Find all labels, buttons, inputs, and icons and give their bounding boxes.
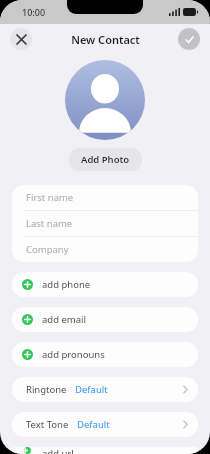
staticText: 10:00: [22, 6, 46, 18]
staticText: add pronouns: [42, 348, 105, 361]
staticText: add url: [42, 447, 74, 454]
staticText: Default: [77, 418, 110, 431]
button[interactable]: Company: [12, 237, 198, 262]
button[interactable]: add email: [12, 307, 198, 332]
button[interactable]: Done: [178, 28, 200, 50]
button[interactable]: Text Tone: [12, 412, 198, 437]
button[interactable]: Add Photo: [69, 148, 142, 171]
staticText: Company: [26, 243, 69, 256]
button[interactable]: Last name: [12, 211, 198, 236]
staticText: add phone: [42, 278, 91, 291]
button[interactable]: Ringtone: [12, 377, 198, 402]
staticText: add email: [42, 313, 86, 326]
button[interactable]: add phone: [12, 272, 198, 297]
staticText: First name: [26, 191, 74, 204]
staticText: Add Photo: [81, 153, 130, 166]
staticText: Ringtone: [26, 383, 67, 396]
button[interactable]: add pronouns: [12, 342, 198, 367]
button[interactable]: Cancel: [10, 28, 32, 50]
staticText: Last name: [26, 217, 73, 230]
staticText: New Contact: [71, 32, 140, 47]
staticText: Text Tone: [26, 418, 69, 431]
button[interactable]: add url: [12, 447, 198, 454]
button[interactable]: Add Photo: [65, 60, 145, 140]
staticText: Default: [75, 383, 108, 396]
button[interactable]: First name: [12, 185, 198, 210]
